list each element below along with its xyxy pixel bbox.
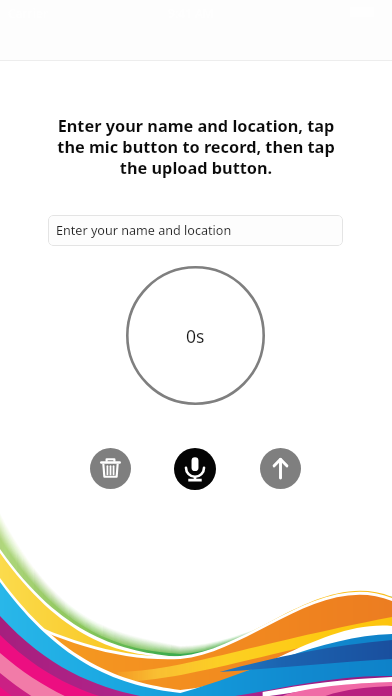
staticText: Enter your name and location, tap the mi… <box>48 115 344 179</box>
staticText: Enter your name and location <box>56 222 232 239</box>
button[interactable]: Record <box>174 448 216 490</box>
button[interactable]: Upload <box>260 448 301 489</box>
button[interactable]: Enter your name and location <box>48 215 343 246</box>
button[interactable]: Delete <box>90 448 131 489</box>
staticText: 0s <box>186 324 205 348</box>
